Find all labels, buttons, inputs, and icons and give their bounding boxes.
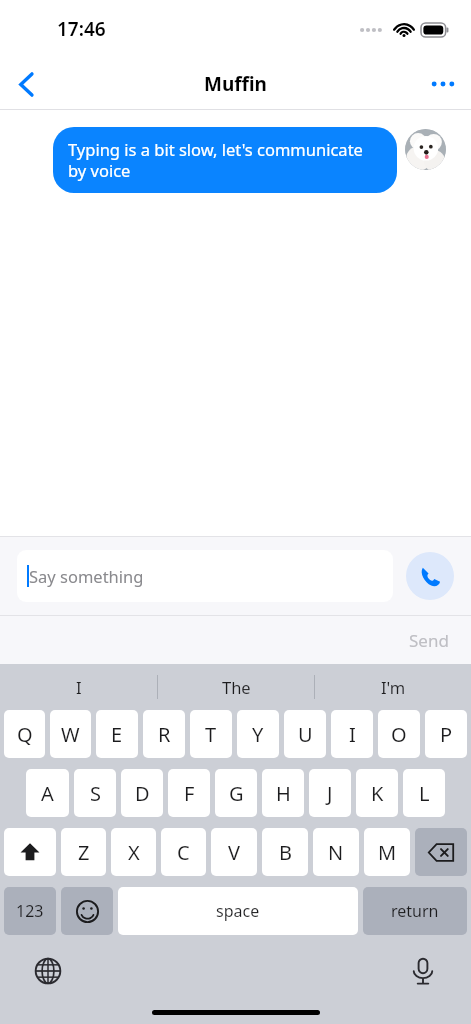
- button[interactable]: G: [215, 769, 257, 817]
- button[interactable]: N: [313, 828, 359, 876]
- button[interactable]: C: [161, 828, 206, 876]
- staticText: D: [135, 780, 150, 807]
- button[interactable]: I: [331, 710, 373, 758]
- button[interactable]: H: [262, 769, 304, 817]
- staticText: H: [276, 780, 291, 807]
- button[interactable]: B: [262, 828, 308, 876]
- button[interactable]: Change keyboard: [28, 951, 68, 991]
- button[interactable]: Backspace: [415, 828, 467, 876]
- staticText: F: [184, 780, 195, 807]
- button[interactable]: Typing is a bit slow, let's communicate …: [53, 127, 397, 193]
- button[interactable]: Send: [409, 629, 449, 652]
- button[interactable]: V: [211, 828, 257, 876]
- button[interactable]: Y: [237, 710, 279, 758]
- button[interactable]: More options: [415, 58, 471, 110]
- staticText: return: [391, 900, 439, 922]
- staticText: Q: [17, 721, 33, 748]
- button[interactable]: F: [168, 769, 210, 817]
- staticText: C: [177, 839, 190, 866]
- button[interactable]: return: [363, 887, 467, 935]
- button[interactable]: P: [425, 710, 467, 758]
- button[interactable]: A: [26, 769, 69, 817]
- staticText: U: [298, 721, 313, 748]
- button[interactable]: O: [378, 710, 420, 758]
- button[interactable]: Shift: [4, 828, 56, 876]
- staticText: G: [229, 780, 244, 807]
- staticText: The: [222, 676, 251, 698]
- button[interactable]: L: [403, 769, 445, 817]
- button[interactable]: T: [190, 710, 232, 758]
- staticText: O: [391, 721, 407, 748]
- button[interactable]: J: [309, 769, 351, 817]
- button[interactable]: I: [0, 664, 157, 710]
- button[interactable]: I'm: [315, 664, 471, 710]
- button[interactable]: S: [74, 769, 116, 817]
- button[interactable]: Q: [4, 710, 45, 758]
- staticText: R: [158, 721, 171, 748]
- button[interactable]: D: [121, 769, 163, 817]
- staticText: Y: [252, 721, 264, 748]
- staticText: S: [90, 780, 101, 807]
- staticText: I: [349, 721, 356, 748]
- button[interactable]: space: [118, 887, 358, 935]
- staticText: I'm: [381, 676, 406, 698]
- button[interactable]: W: [50, 710, 91, 758]
- button[interactable]: M: [364, 828, 410, 876]
- staticText: T: [205, 721, 217, 748]
- button[interactable]: Dictation: [403, 951, 443, 991]
- staticText: A: [41, 780, 54, 807]
- staticText: W: [61, 721, 80, 748]
- staticText: Say something: [29, 565, 144, 587]
- button[interactable]: The: [158, 664, 314, 710]
- button[interactable]: E: [96, 710, 138, 758]
- button[interactable]: Back: [0, 58, 52, 110]
- button[interactable]: U: [284, 710, 326, 758]
- staticText: Z: [78, 839, 90, 866]
- button[interactable]: Emoji: [61, 887, 113, 935]
- staticText: J: [327, 780, 333, 807]
- staticText: P: [440, 721, 453, 748]
- staticText: Send: [409, 629, 449, 652]
- staticText: K: [371, 780, 384, 807]
- staticText: V: [228, 839, 240, 866]
- staticText: M: [378, 839, 397, 866]
- button[interactable]: Say something: [17, 550, 393, 602]
- staticText: X: [128, 839, 140, 866]
- staticText: N: [328, 839, 344, 866]
- button[interactable]: 123: [4, 887, 56, 935]
- staticText: space: [216, 900, 260, 922]
- button[interactable]: K: [356, 769, 398, 817]
- staticText: L: [419, 780, 430, 807]
- staticText: 17:46: [57, 16, 106, 42]
- button[interactable]: R: [143, 710, 185, 758]
- button[interactable]: X: [111, 828, 156, 876]
- button[interactable]: Voice call: [406, 552, 454, 600]
- staticText: B: [279, 839, 292, 866]
- button[interactable]: Z: [61, 828, 106, 876]
- staticText: Muffin: [204, 71, 267, 97]
- staticText: E: [111, 721, 123, 748]
- staticText: Typing is a bit slow, let's communicate …: [68, 138, 382, 182]
- staticText: I: [76, 676, 82, 698]
- staticText: 123: [16, 900, 44, 922]
